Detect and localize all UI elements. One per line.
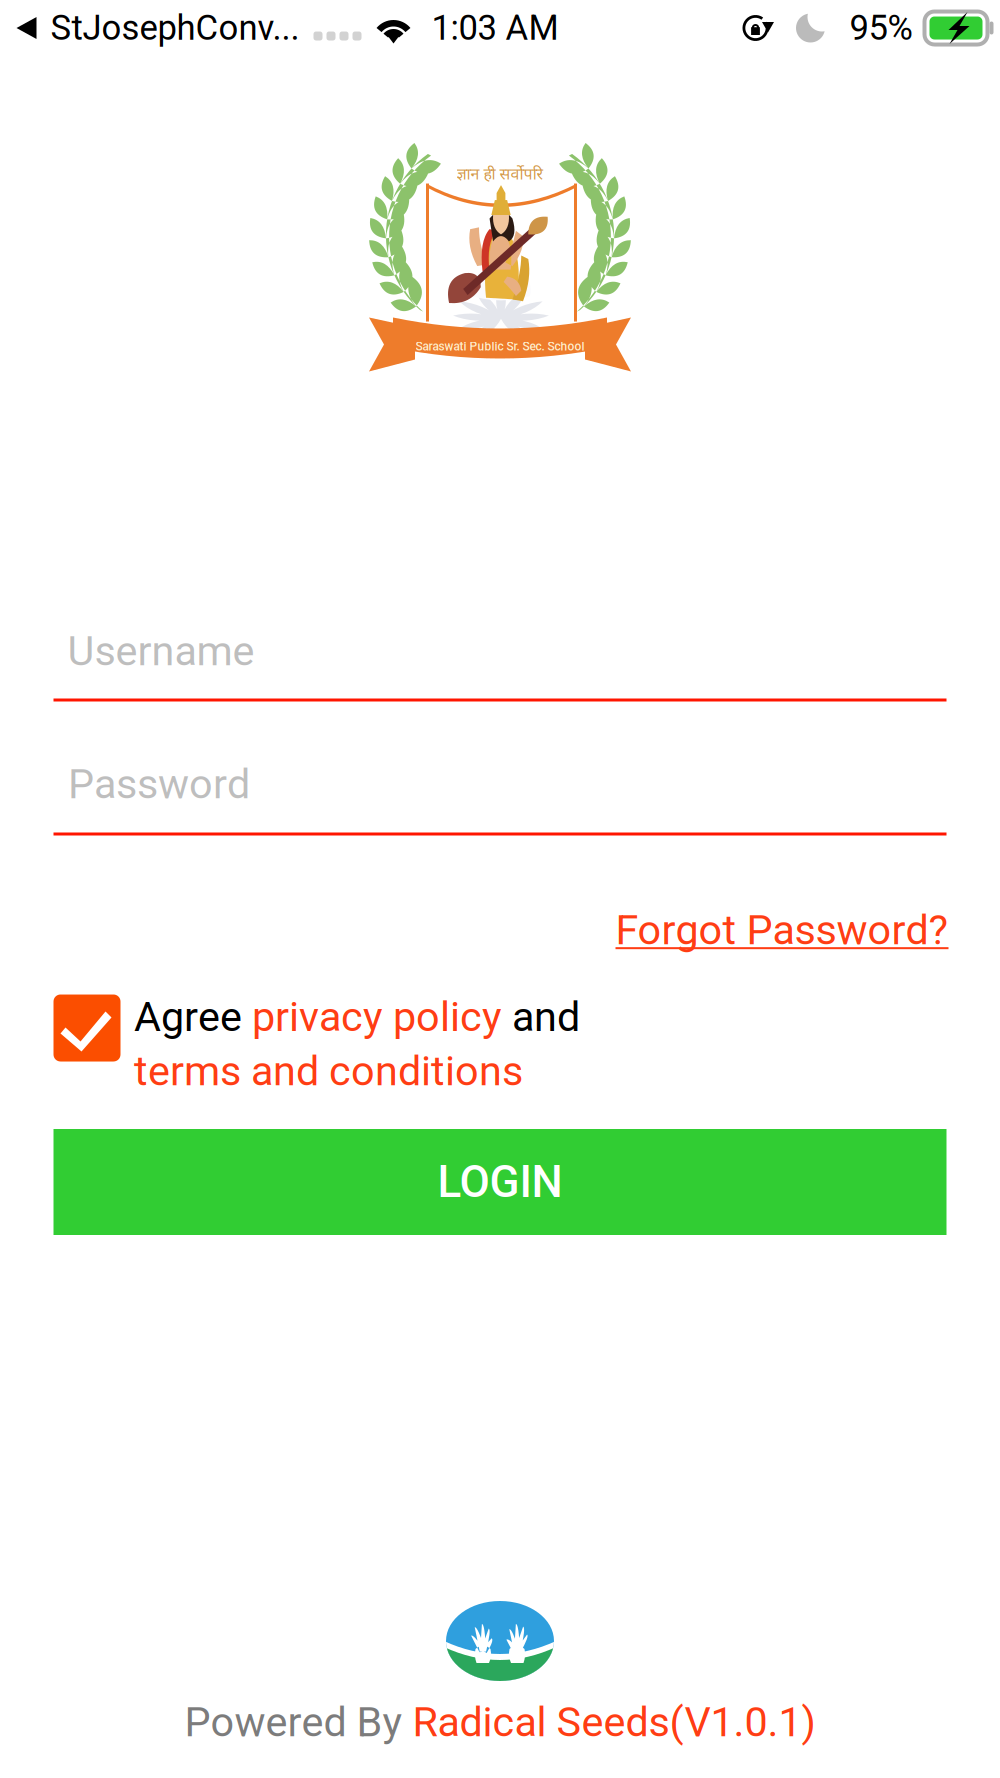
- staticText: Radical Seeds(V1.0.1): [412, 1698, 815, 1746]
- staticText: Agree: [134, 993, 252, 1041]
- staticText: Powered By: [184, 1698, 412, 1746]
- staticText: 1:03 AM: [431, 8, 558, 48]
- staticText: terms and conditions: [134, 1047, 523, 1095]
- staticText: LOGIN: [437, 1156, 562, 1208]
- staticText: ज्ञान ही सर्वोपरि: [456, 165, 543, 186]
- button[interactable]: Agree to privacy policy and terms and co…: [53, 994, 120, 1061]
- staticText: Username: [67, 627, 254, 675]
- staticText: Saraswati Public Sr. Sec. School: [415, 339, 584, 354]
- button[interactable]: terms and conditions: [134, 1047, 523, 1095]
- staticText: Password: [68, 760, 250, 808]
- staticText: and: [502, 993, 580, 1041]
- button[interactable]: LOGIN: [53, 1129, 946, 1235]
- staticText: privacy policy: [252, 993, 502, 1041]
- button[interactable]: Forgot Password?: [615, 898, 948, 962]
- staticText: Forgot Password?: [615, 906, 948, 954]
- staticText: StJosephConv...: [50, 8, 299, 48]
- staticText: 95%: [849, 8, 912, 48]
